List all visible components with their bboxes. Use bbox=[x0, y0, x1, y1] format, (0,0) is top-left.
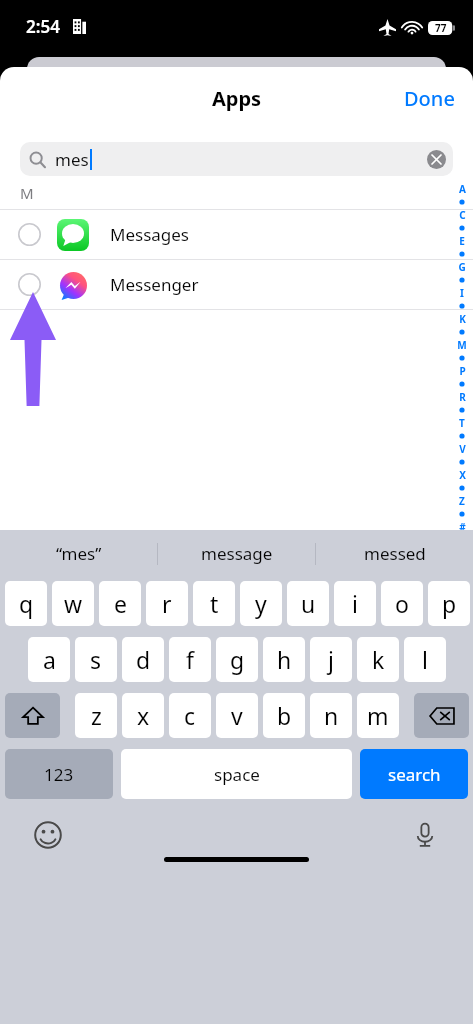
button[interactable]: x bbox=[122, 693, 164, 738]
staticText: k bbox=[372, 644, 385, 675]
button[interactable]: u bbox=[287, 581, 329, 626]
button[interactable]: y bbox=[240, 581, 282, 626]
staticText: u bbox=[301, 588, 316, 619]
staticText: M bbox=[20, 183, 34, 203]
staticText: search bbox=[388, 763, 441, 786]
staticText: R bbox=[459, 390, 466, 404]
button[interactable]: b bbox=[263, 693, 305, 738]
button[interactable]: s bbox=[75, 637, 117, 682]
button[interactable]: mes bbox=[20, 142, 453, 176]
staticText: 77 bbox=[435, 21, 447, 35]
staticText: A bbox=[459, 182, 466, 196]
button[interactable]: c bbox=[169, 693, 211, 738]
staticText: 2:54 bbox=[26, 15, 60, 38]
staticText: n bbox=[324, 700, 339, 731]
staticText: b bbox=[277, 700, 292, 731]
staticText: v bbox=[231, 700, 243, 731]
staticText: V bbox=[459, 442, 466, 456]
staticText: Z bbox=[459, 494, 465, 508]
button[interactable]: Shift bbox=[5, 693, 60, 738]
staticText: s bbox=[90, 644, 102, 675]
staticText: h bbox=[277, 644, 292, 675]
button[interactable]: w bbox=[52, 581, 94, 626]
button[interactable]: d bbox=[122, 637, 164, 682]
button[interactable]: A bbox=[451, 182, 473, 530]
staticText: d bbox=[136, 644, 151, 675]
staticText: C bbox=[459, 208, 466, 222]
staticText: a bbox=[43, 644, 56, 675]
button[interactable]: e bbox=[99, 581, 141, 626]
button[interactable]: m bbox=[357, 693, 399, 738]
button[interactable]: message bbox=[158, 530, 315, 577]
staticText: o bbox=[395, 588, 409, 619]
staticText: P bbox=[459, 364, 466, 378]
staticText: “mes” bbox=[56, 542, 102, 565]
button[interactable]: o bbox=[381, 581, 423, 626]
button[interactable]: p bbox=[428, 581, 470, 626]
staticText: T bbox=[459, 416, 465, 430]
button[interactable]: q bbox=[5, 581, 47, 626]
staticText: X bbox=[459, 468, 466, 482]
staticText: m bbox=[367, 700, 389, 731]
staticText: t bbox=[210, 588, 219, 619]
staticText: I bbox=[460, 286, 464, 300]
button[interactable]: n bbox=[310, 693, 352, 738]
staticText: q bbox=[19, 588, 34, 619]
button[interactable]: space bbox=[121, 749, 352, 799]
button[interactable]: search bbox=[360, 749, 468, 799]
button[interactable]: Emoji bbox=[30, 817, 66, 853]
staticText: i bbox=[352, 588, 358, 619]
staticText: y bbox=[255, 588, 267, 619]
staticText: G bbox=[458, 260, 466, 274]
button[interactable]: Dictate bbox=[407, 817, 443, 853]
staticText: Messenger bbox=[110, 273, 199, 296]
button[interactable]: v bbox=[216, 693, 258, 738]
staticText: j bbox=[328, 644, 334, 675]
staticText: f bbox=[186, 644, 194, 675]
staticText: space bbox=[214, 763, 260, 786]
button[interactable]: j bbox=[310, 637, 352, 682]
staticText: z bbox=[91, 700, 102, 731]
staticText: E bbox=[459, 234, 465, 248]
button[interactable]: a bbox=[28, 637, 70, 682]
button[interactable]: Messages bbox=[0, 210, 473, 259]
staticText: g bbox=[230, 644, 245, 675]
staticText: l bbox=[422, 644, 428, 675]
button[interactable]: f bbox=[169, 637, 211, 682]
button[interactable]: messed bbox=[316, 530, 473, 577]
staticText: Apps bbox=[212, 85, 262, 112]
button[interactable]: i bbox=[334, 581, 376, 626]
button[interactable]: k bbox=[357, 637, 399, 682]
button[interactable]: l bbox=[404, 637, 446, 682]
staticText: c bbox=[184, 700, 196, 731]
button[interactable]: “mes” bbox=[0, 530, 157, 577]
staticText: Messages bbox=[110, 223, 190, 246]
staticText: # bbox=[459, 520, 466, 530]
button[interactable]: z bbox=[75, 693, 117, 738]
staticText: M bbox=[457, 338, 467, 352]
button[interactable]: r bbox=[146, 581, 188, 626]
button[interactable]: g bbox=[216, 637, 258, 682]
staticText: message bbox=[201, 542, 273, 565]
button[interactable]: Clear text bbox=[427, 150, 446, 169]
button[interactable]: t bbox=[193, 581, 235, 626]
button[interactable]: Done bbox=[386, 77, 473, 120]
staticText: K bbox=[459, 312, 466, 326]
button[interactable]: Backspace bbox=[414, 693, 469, 738]
staticText: x bbox=[137, 700, 150, 731]
button[interactable]: 123 bbox=[5, 749, 113, 799]
staticText: r bbox=[162, 588, 172, 619]
staticText: e bbox=[114, 588, 127, 619]
button[interactable]: Messenger bbox=[0, 260, 473, 309]
staticText: Done bbox=[404, 85, 455, 112]
staticText: p bbox=[442, 588, 457, 619]
staticText: mes bbox=[55, 148, 89, 171]
button[interactable]: h bbox=[263, 637, 305, 682]
staticText: 123 bbox=[44, 763, 74, 786]
staticText: messed bbox=[364, 542, 426, 565]
staticText: w bbox=[64, 588, 83, 619]
